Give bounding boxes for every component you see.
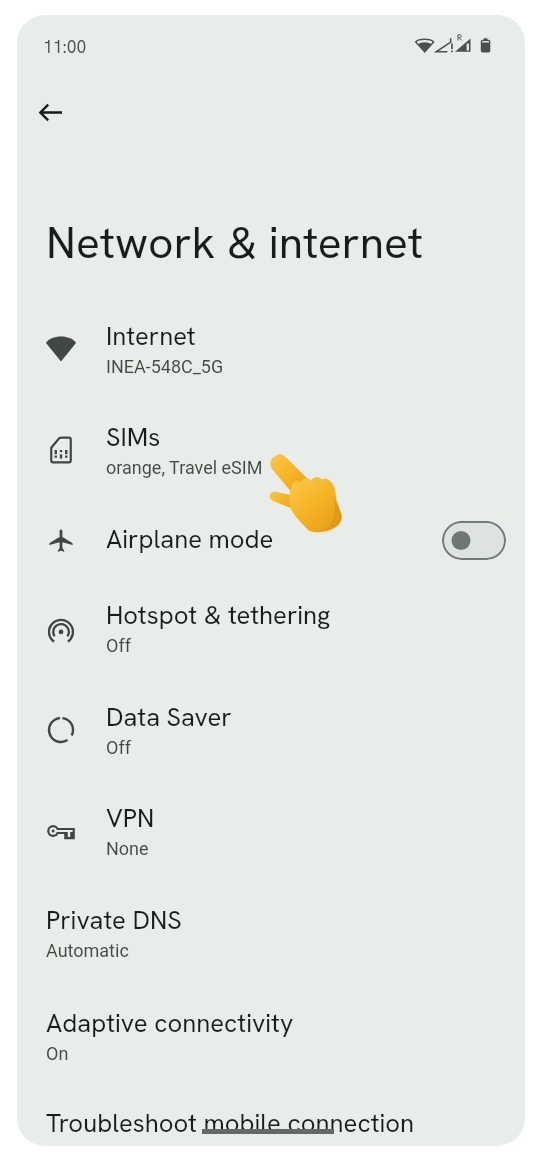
button[interactable] [17, 394, 525, 482]
staticText: Hotspot & tethering [106, 598, 331, 631]
staticText: Off [106, 737, 131, 758]
staticText: On [46, 1043, 69, 1064]
staticText: Data Saver [106, 700, 232, 733]
staticText: INEA-548C_5G [106, 356, 224, 377]
staticText: Adaptive connectivity [46, 1006, 294, 1039]
staticText: Off [106, 635, 131, 656]
button[interactable]: Navigate up [24, 86, 76, 138]
button[interactable] [17, 293, 525, 381]
staticText: Troubleshoot mobile connection [46, 1106, 415, 1139]
button[interactable] [17, 980, 525, 1068]
staticText: Automatic [46, 940, 129, 961]
staticText: Airplane mode [106, 522, 274, 555]
button[interactable] [17, 877, 525, 965]
staticText: Network & internet [46, 214, 424, 272]
staticText: SIMs [106, 420, 161, 453]
button[interactable] [17, 674, 525, 762]
staticText: orange, Travel eSIM [106, 457, 263, 478]
button[interactable]: Airplane mode switch [442, 521, 506, 560]
button[interactable] [17, 1080, 525, 1146]
staticText: Private DNS [46, 903, 182, 936]
staticText: None [106, 838, 149, 859]
button[interactable] [17, 496, 525, 568]
button[interactable] [17, 572, 525, 660]
button[interactable] [17, 775, 525, 863]
staticText: 11:00 [43, 35, 87, 58]
staticText: Internet [106, 319, 196, 352]
staticText: VPN [106, 801, 155, 834]
